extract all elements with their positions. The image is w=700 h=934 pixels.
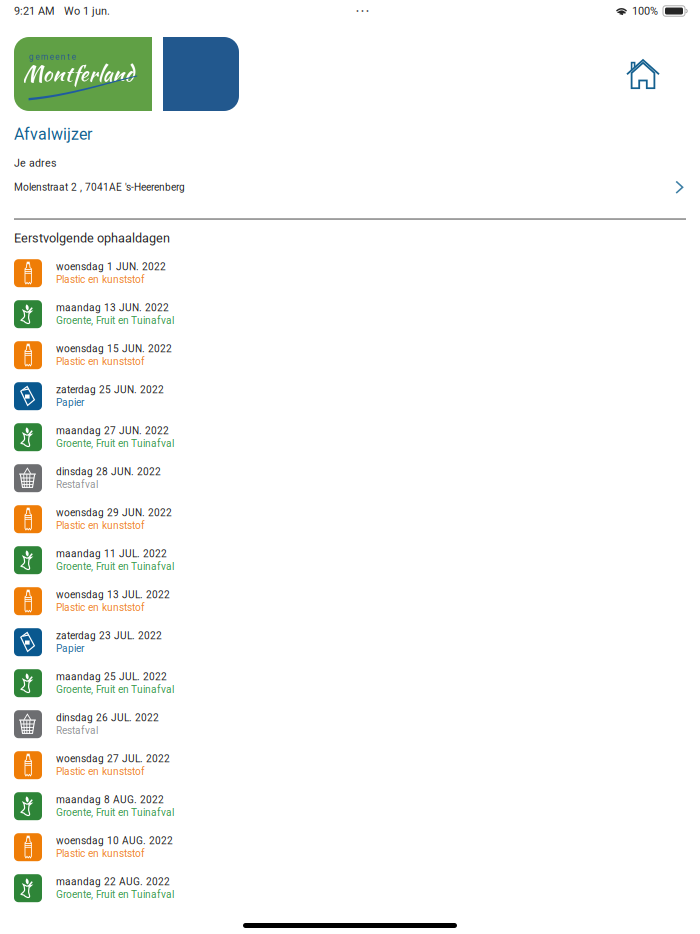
staticText: Papier — [56, 397, 84, 409]
staticText: Plastic en kunststof — [56, 766, 145, 778]
staticText: Plastic en kunststof — [56, 520, 145, 532]
staticText: maandag 22 AUG. 2022 — [56, 876, 170, 888]
button[interactable]: maandag 27 JUN. 2022 — [0, 417, 700, 458]
staticText: Montferland — [22, 57, 133, 89]
staticText: Groente, Fruit en Tuinafval — [56, 438, 174, 450]
staticText: Afvalwijzer — [14, 125, 92, 144]
staticText: Molenstraat 2 , 7041AE 's-Heerenberg — [14, 181, 185, 193]
button[interactable]: maandag 22 AUG. 2022 — [0, 868, 700, 909]
button[interactable]: maandag 13 JUN. 2022 — [0, 294, 700, 335]
staticText: woensdag 29 JUN. 2022 — [56, 507, 172, 519]
staticText: gemeente — [29, 52, 76, 62]
staticText: Wo 1 jun. — [64, 5, 110, 17]
button[interactable]: woensdag 10 AUG. 2022 — [0, 827, 700, 868]
staticText: Groente, Fruit en Tuinafval — [56, 684, 174, 696]
staticText: woensdag 10 AUG. 2022 — [56, 835, 173, 847]
button[interactable]: woensdag 15 JUN. 2022 — [0, 335, 700, 376]
button[interactable]: woensdag 27 JUL. 2022 — [0, 745, 700, 786]
staticText: Groente, Fruit en Tuinafval — [56, 807, 174, 819]
staticText: Restafval — [56, 725, 98, 737]
button[interactable]: maandag 11 JUL. 2022 — [0, 540, 700, 581]
staticText: 100% — [632, 5, 658, 17]
button[interactable]: Home — [616, 49, 670, 100]
staticText: maandag 27 JUN. 2022 — [56, 425, 169, 437]
staticText: Eerstvolgende ophaaldagen — [14, 231, 170, 246]
button[interactable]: dinsdag 26 JUL. 2022 — [0, 704, 700, 745]
staticText: zaterdag 23 JUL. 2022 — [56, 630, 162, 642]
staticText: Plastic en kunststof — [56, 274, 145, 286]
staticText: zaterdag 25 JUN. 2022 — [56, 384, 164, 396]
staticText: Groente, Fruit en Tuinafval — [56, 315, 174, 327]
staticText: maandag 25 JUL. 2022 — [56, 671, 167, 683]
staticText: maandag 13 JUN. 2022 — [56, 302, 169, 314]
staticText: Restafval — [56, 479, 98, 491]
button[interactable]: Molenstraat 2 , 7041AE 's-Heerenberg — [0, 175, 700, 199]
staticText: Groente, Fruit en Tuinafval — [56, 889, 174, 901]
staticText: maandag 11 JUL. 2022 — [56, 548, 167, 560]
staticText: Plastic en kunststof — [56, 356, 145, 368]
button[interactable]: zaterdag 23 JUL. 2022 — [0, 622, 700, 663]
staticText: dinsdag 26 JUL. 2022 — [56, 712, 159, 724]
staticText: maandag 8 AUG. 2022 — [56, 794, 164, 806]
button[interactable]: woensdag 1 JUN. 2022 — [0, 253, 700, 294]
button[interactable]: maandag 8 AUG. 2022 — [0, 786, 700, 827]
button[interactable]: dinsdag 28 JUN. 2022 — [0, 458, 700, 499]
button[interactable]: woensdag 29 JUN. 2022 — [0, 499, 700, 540]
button[interactable]: zaterdag 25 JUN. 2022 — [0, 376, 700, 417]
staticText: 9:21 AM — [14, 5, 55, 17]
staticText: Papier — [56, 643, 84, 655]
button[interactable]: maandag 25 JUL. 2022 — [0, 663, 700, 704]
staticText: woensdag 13 JUL. 2022 — [56, 589, 170, 601]
staticText: woensdag 1 JUN. 2022 — [56, 261, 166, 273]
staticText: dinsdag 28 JUN. 2022 — [56, 466, 161, 478]
staticText: woensdag 15 JUN. 2022 — [56, 343, 172, 355]
staticText: Groente, Fruit en Tuinafval — [56, 561, 174, 573]
staticText: • • • — [356, 6, 369, 16]
staticText: Je adres — [14, 157, 57, 169]
button[interactable]: woensdag 13 JUL. 2022 — [0, 581, 700, 622]
staticText: Plastic en kunststof — [56, 848, 145, 860]
staticText: Plastic en kunststof — [56, 602, 145, 614]
staticText: woensdag 27 JUL. 2022 — [56, 753, 170, 765]
